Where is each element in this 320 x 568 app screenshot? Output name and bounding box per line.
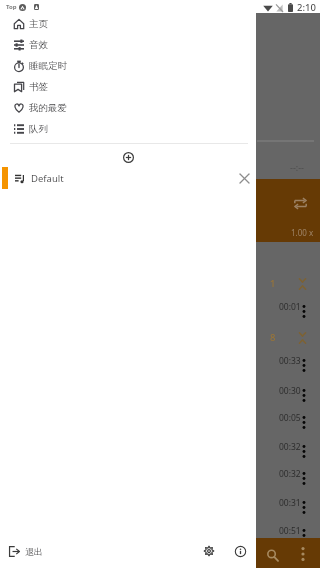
staticText: 主页: [29, 18, 48, 30]
button[interactable]: 我的最爱: [0, 98, 256, 118]
staticText: 2:10: [297, 1, 316, 14]
button[interactable]: 主页: [0, 14, 256, 34]
button[interactable]: Track options: [298, 470, 310, 486]
staticText: 00:05: [279, 412, 301, 424]
staticText: 队列: [29, 123, 48, 135]
staticText: 00:01: [279, 301, 301, 313]
button[interactable]: 00:01: [256, 298, 320, 314]
staticText: 音效: [29, 39, 48, 51]
button[interactable]: Track options: [298, 499, 310, 515]
button[interactable]: Track options: [298, 414, 310, 430]
button[interactable]: Track options: [298, 303, 310, 319]
staticText: Top: [6, 3, 17, 11]
staticText: 8: [270, 331, 276, 344]
staticText: 00:30: [279, 385, 301, 397]
button[interactable]: Track options: [298, 443, 310, 459]
button[interactable]: Track options: [298, 527, 310, 543]
button[interactable]: 00:33: [256, 352, 320, 368]
button[interactable]: Track options: [298, 387, 310, 403]
button[interactable]: 00:30: [256, 382, 320, 398]
staticText: --:--: [290, 161, 305, 173]
staticText: Default: [31, 172, 64, 185]
button[interactable]: 00:32: [256, 438, 320, 454]
staticText: 睡眠定时: [29, 60, 67, 72]
button[interactable]: 00:31: [256, 494, 320, 510]
button[interactable]: 睡眠定时: [0, 56, 256, 76]
button[interactable]: Settings: [196, 538, 222, 564]
staticText: 退出: [25, 546, 43, 557]
button[interactable]: 1: [256, 275, 320, 291]
button[interactable]: Search: [263, 545, 283, 565]
button[interactable]: Track options: [298, 357, 310, 373]
button[interactable]: Playback speed: [256, 179, 320, 242]
button[interactable]: 00:05: [256, 409, 320, 425]
staticText: 00:51: [279, 525, 301, 537]
staticText: 书签: [29, 81, 48, 93]
button[interactable]: 8: [256, 329, 320, 345]
button[interactable]: 00:32: [256, 465, 320, 481]
staticText: 1.00 x: [291, 227, 314, 238]
button[interactable]: More options: [295, 544, 311, 564]
button[interactable]: Default: [0, 167, 256, 189]
button[interactable]: 队列: [0, 119, 256, 139]
staticText: 1: [270, 277, 276, 290]
button[interactable]: Close: [233, 167, 255, 189]
button[interactable]: Add playlist: [116, 145, 140, 169]
staticText: 00:31: [279, 497, 301, 509]
staticText: 00:32: [279, 441, 301, 453]
button[interactable]: 书签: [0, 77, 256, 97]
staticText: 00:32: [279, 468, 301, 480]
staticText: 00:33: [279, 355, 301, 367]
button[interactable]: 00:51: [256, 522, 320, 538]
staticText: 我的最爱: [29, 102, 67, 114]
button[interactable]: About: [227, 538, 253, 564]
button[interactable]: 退出: [0, 534, 49, 568]
button[interactable]: 音效: [0, 35, 256, 55]
